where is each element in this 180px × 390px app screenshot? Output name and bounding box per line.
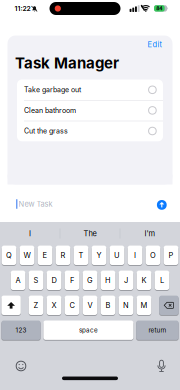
staticText: Edit bbox=[147, 40, 161, 49]
button[interactable]: R bbox=[56, 246, 70, 266]
button[interactable]: X bbox=[47, 296, 61, 316]
staticText: S bbox=[33, 276, 38, 285]
button[interactable]: New Task bbox=[8, 193, 152, 215]
staticText: E bbox=[42, 251, 47, 260]
button[interactable]: K bbox=[137, 271, 151, 291]
staticText: A bbox=[15, 276, 20, 285]
button[interactable]: S bbox=[29, 271, 43, 291]
button[interactable]: J bbox=[119, 271, 133, 291]
staticText: 11:22 bbox=[14, 4, 30, 13]
staticText: I bbox=[29, 229, 31, 238]
button[interactable]: I'm bbox=[122, 223, 178, 243]
staticText: M bbox=[140, 301, 147, 310]
button[interactable]: Edit bbox=[131, 38, 161, 50]
button[interactable]: Take garbage out bbox=[17, 79, 163, 100]
button[interactable]: D bbox=[47, 271, 61, 291]
button[interactable]: Dictate bbox=[156, 360, 166, 372]
button[interactable]: 123 bbox=[1, 320, 41, 341]
staticText: K bbox=[141, 276, 146, 285]
staticText: I'm bbox=[144, 229, 155, 238]
staticText: N bbox=[123, 301, 129, 310]
button[interactable]: Add Task bbox=[156, 199, 168, 211]
button[interactable]: P bbox=[164, 246, 178, 266]
button[interactable]: O bbox=[146, 246, 160, 266]
staticText: Task Manager bbox=[15, 54, 119, 72]
button[interactable]: M bbox=[137, 296, 151, 316]
button[interactable]: U bbox=[110, 246, 124, 266]
staticText: L bbox=[160, 276, 164, 285]
button[interactable]: Z bbox=[29, 296, 43, 316]
staticText: P bbox=[168, 251, 173, 260]
staticText: T bbox=[78, 251, 83, 260]
staticText: Q bbox=[6, 251, 12, 260]
button[interactable]: Shift bbox=[1, 296, 21, 316]
button[interactable]: The bbox=[62, 223, 118, 243]
button[interactable]: Cut the grass bbox=[17, 121, 163, 141]
staticText: I bbox=[134, 251, 136, 260]
staticText: W bbox=[23, 251, 30, 260]
staticText: Cut the grass bbox=[24, 127, 68, 135]
button[interactable]: W bbox=[20, 246, 34, 266]
button[interactable]: T bbox=[74, 246, 88, 266]
button[interactable]: Emoji bbox=[15, 360, 27, 372]
staticText: The bbox=[83, 229, 96, 238]
staticText: O bbox=[150, 251, 156, 260]
staticText: R bbox=[60, 251, 65, 260]
button[interactable]: H bbox=[101, 271, 115, 291]
staticText: F bbox=[70, 276, 74, 285]
button[interactable]: space bbox=[43, 320, 133, 341]
button[interactable]: return bbox=[136, 320, 179, 341]
button[interactable]: A bbox=[11, 271, 25, 291]
button[interactable]: Clean bathroom bbox=[17, 100, 163, 121]
button[interactable]: I bbox=[2, 223, 58, 243]
staticText: G bbox=[87, 276, 93, 285]
staticText: X bbox=[51, 301, 56, 310]
staticText: return bbox=[148, 326, 166, 334]
staticText: V bbox=[87, 301, 92, 310]
button[interactable]: Q bbox=[2, 246, 16, 266]
button[interactable]: C bbox=[65, 296, 79, 316]
button[interactable]: Y bbox=[92, 246, 106, 266]
button[interactable]: Delete bbox=[159, 296, 179, 316]
staticText: Take garbage out bbox=[24, 86, 81, 94]
button[interactable]: E bbox=[38, 246, 52, 266]
staticText: C bbox=[69, 301, 74, 310]
staticText: Z bbox=[33, 301, 38, 310]
button[interactable]: B bbox=[101, 296, 115, 316]
button[interactable]: L bbox=[155, 271, 169, 291]
staticText: Clean bathroom bbox=[24, 106, 76, 115]
staticText: space bbox=[79, 326, 98, 334]
staticText: D bbox=[51, 276, 56, 285]
staticText: U bbox=[114, 251, 120, 260]
button[interactable]: N bbox=[119, 296, 133, 316]
button[interactable]: I bbox=[128, 246, 142, 266]
staticText: 123 bbox=[15, 326, 26, 334]
staticText: New Task bbox=[18, 199, 52, 209]
staticText: 84 bbox=[156, 5, 162, 11]
button[interactable]: F bbox=[65, 271, 79, 291]
staticText: B bbox=[105, 301, 110, 310]
button[interactable]: V bbox=[83, 296, 97, 316]
staticText: H bbox=[105, 276, 111, 285]
staticText: Y bbox=[96, 251, 101, 260]
button[interactable]: G bbox=[83, 271, 97, 291]
staticText: J bbox=[124, 276, 128, 285]
